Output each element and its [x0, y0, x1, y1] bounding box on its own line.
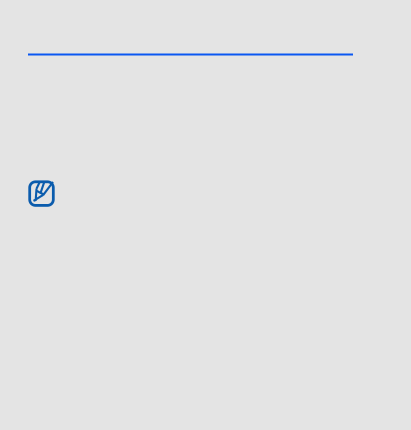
button[interactable]: Note: [28, 180, 55, 207]
